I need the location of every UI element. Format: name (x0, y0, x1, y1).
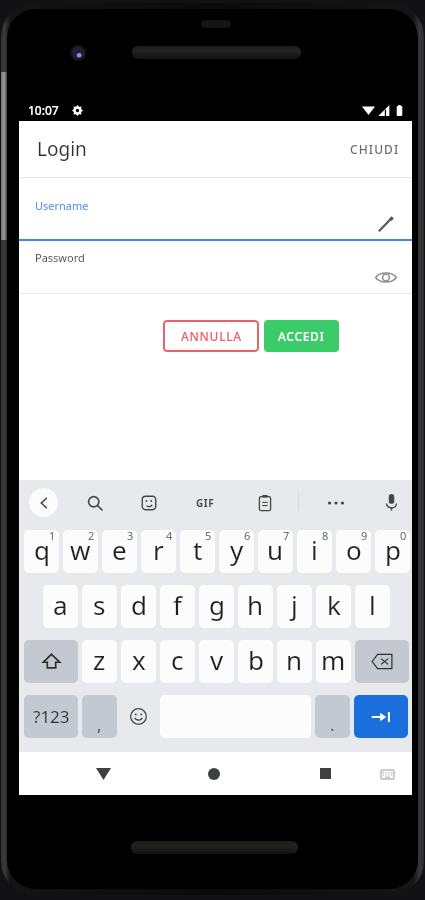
button[interactable]: Search (80, 488, 109, 517)
staticText: 3 (127, 530, 134, 543)
staticText: k (327, 587, 341, 622)
staticText: . (330, 713, 335, 736)
staticText: d (131, 587, 147, 622)
button[interactable]: Comma (82, 695, 117, 738)
staticText: j (291, 587, 298, 622)
other: Edit username (376, 215, 395, 234)
button[interactable]: Voice input (377, 488, 406, 517)
button[interactable]: p (375, 530, 410, 573)
button[interactable]: Period (315, 695, 350, 738)
staticText: 10:07 (28, 102, 59, 118)
staticText: 2 (88, 530, 95, 543)
staticText: p (385, 532, 401, 567)
button[interactable]: ACCEDI (264, 320, 339, 352)
button[interactable]: d (121, 585, 156, 628)
staticText: 1 (49, 530, 56, 543)
staticText: 9 (361, 530, 368, 543)
button[interactable]: Back (29, 488, 58, 517)
staticText: ANNULLA (181, 328, 242, 344)
button[interactable]: Clipboard (250, 488, 279, 517)
button[interactable]: q (24, 530, 59, 573)
button[interactable]: n (277, 640, 312, 683)
button[interactable]: t (180, 530, 215, 573)
button[interactable]: i (297, 530, 332, 573)
button[interactable]: More options (321, 488, 350, 517)
staticText: CHIUDI (350, 141, 400, 157)
button[interactable]: s (82, 585, 117, 628)
staticText: c (171, 642, 184, 677)
staticText: f (173, 587, 182, 622)
staticText: 0 (400, 530, 407, 543)
staticText: 5 (205, 530, 212, 543)
button[interactable]: g (199, 585, 234, 628)
staticText: m (321, 642, 346, 677)
staticText: s (93, 587, 106, 622)
staticText: a (53, 587, 68, 622)
button[interactable]: Back (81, 752, 125, 795)
staticText: GIF (196, 496, 215, 510)
button[interactable]: Password (19, 241, 412, 294)
staticText: l (369, 587, 376, 622)
staticText: Username (35, 198, 89, 213)
staticText: x (132, 642, 146, 677)
staticText: n (286, 642, 303, 677)
button[interactable]: z (82, 640, 117, 683)
button[interactable]: v (199, 640, 234, 683)
button[interactable]: Home (192, 752, 236, 795)
button[interactable]: y (219, 530, 254, 573)
staticText: i (311, 532, 318, 567)
staticText: q (34, 532, 50, 567)
staticText: 4 (166, 530, 173, 543)
staticText: r (153, 532, 164, 567)
button[interactable]: u (258, 530, 293, 573)
staticText: y (230, 532, 244, 567)
staticText: 8 (322, 530, 329, 543)
button[interactable]: Next field (354, 695, 408, 738)
button[interactable]: Change keyboard (371, 758, 403, 790)
staticText: 6 (244, 530, 251, 543)
staticText: w (70, 532, 91, 567)
button[interactable]: f (160, 585, 195, 628)
staticText: e (112, 532, 127, 567)
staticText: ACCEDI (278, 328, 325, 344)
button[interactable]: Recent apps (303, 752, 347, 795)
staticText: o (346, 532, 362, 567)
button[interactable]: e (102, 530, 137, 573)
button[interactable]: Backspace (355, 640, 409, 683)
button[interactable]: k (316, 585, 351, 628)
button[interactable]: j (277, 585, 312, 628)
staticText: Login (37, 136, 87, 162)
button[interactable]: x (121, 640, 156, 683)
button[interactable]: l (355, 585, 390, 628)
staticText: b (248, 642, 264, 677)
button[interactable]: ANNULLA (163, 320, 259, 352)
staticText: 7 (283, 530, 290, 543)
button[interactable]: Shift (24, 640, 78, 683)
staticText: , (97, 713, 102, 736)
button[interactable]: m (316, 640, 351, 683)
staticText: v (210, 642, 224, 677)
staticText: h (247, 587, 264, 622)
button[interactable]: b (238, 640, 273, 683)
button[interactable]: Username (19, 178, 412, 241)
button[interactable]: Stickers (134, 488, 163, 517)
button[interactable]: a (43, 585, 78, 628)
staticText: t (193, 532, 203, 567)
button[interactable]: GIF (191, 488, 220, 517)
staticText: g (209, 587, 225, 622)
button[interactable]: w (63, 530, 98, 573)
staticText: ?123 (33, 705, 70, 728)
button[interactable]: c (160, 640, 195, 683)
staticText: z (93, 642, 106, 677)
staticText: Password (35, 250, 85, 265)
button[interactable]: o (336, 530, 371, 573)
button[interactable]: r (141, 530, 176, 573)
other: Show password (375, 270, 397, 285)
button[interactable]: h (238, 585, 273, 628)
button[interactable]: Symbols (24, 695, 78, 738)
button[interactable]: Emoji (121, 695, 156, 738)
button[interactable]: CHIUDI (334, 129, 412, 169)
staticText: u (267, 532, 284, 567)
